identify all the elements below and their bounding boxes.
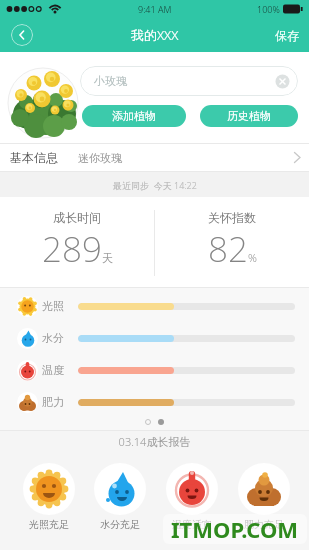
staticText: 水分充足 <box>100 518 140 531</box>
staticText: 最近同步 今天 14:22 <box>113 179 197 191</box>
staticText: 天 <box>102 251 113 265</box>
staticText: % <box>248 250 257 265</box>
button[interactable]: 光照 <box>0 290 309 322</box>
staticText: 水分 <box>42 331 64 345</box>
staticText: 289 <box>42 225 102 273</box>
button[interactable]: 历史植物 <box>200 105 298 127</box>
staticText: 光照充足 <box>29 518 69 531</box>
button[interactable]: 肥力 <box>0 386 309 418</box>
button[interactable]: 肥力充足 <box>228 463 300 531</box>
staticText: 添加植物 <box>112 109 156 123</box>
button[interactable]: 温度 <box>0 354 309 386</box>
button[interactable]: 保存 <box>275 28 299 43</box>
button[interactable]: 光照充足 <box>13 463 84 531</box>
staticText: 历史植物 <box>227 109 271 123</box>
button[interactable]: 小玫瑰 <box>80 66 298 96</box>
staticText: 小玫瑰 <box>94 74 127 88</box>
button[interactable] <box>11 24 33 46</box>
staticText: 我的XXX <box>131 26 179 44</box>
button[interactable]: 水分充足 <box>84 463 156 531</box>
staticText: 迷你玫瑰 <box>78 151 122 165</box>
staticText: 成长时间 <box>53 210 101 225</box>
staticText: ITMOP.COM <box>171 514 299 544</box>
staticText: 保存 <box>275 28 299 43</box>
staticText: 肥力充足 <box>244 518 284 531</box>
staticText: 82 <box>208 225 248 273</box>
staticText: 光照 <box>42 299 64 313</box>
staticText: 关怀指数 <box>208 210 256 225</box>
button[interactable]: 添加植物 <box>82 105 186 127</box>
staticText: 03.14成长报告 <box>0 434 309 449</box>
staticText: 肥力 <box>42 395 64 409</box>
staticText: 基本信息 <box>10 150 58 165</box>
button[interactable]: 水分 <box>0 322 309 354</box>
button[interactable]: 温度适宜 <box>156 463 228 531</box>
button[interactable]: 基本信息 <box>0 144 309 171</box>
staticText: 温度 <box>42 363 64 377</box>
staticText: 9:41 AM <box>138 3 172 15</box>
staticText: 温度适宜 <box>172 518 212 531</box>
staticText: 100% <box>257 3 280 15</box>
